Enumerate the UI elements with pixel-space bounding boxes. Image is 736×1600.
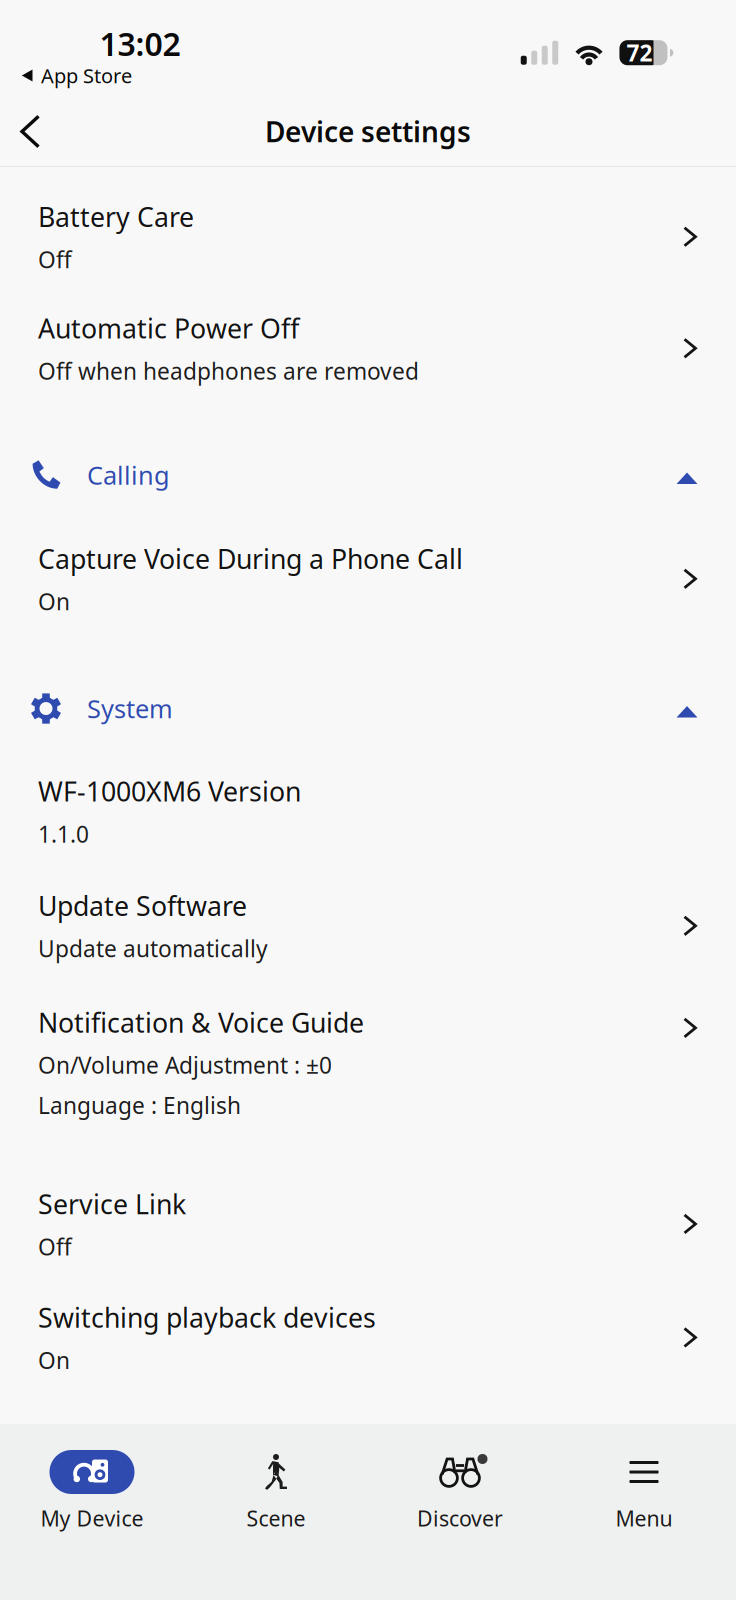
staticText: Device settings — [265, 113, 471, 150]
staticText: WF-1000XM6 Version — [38, 773, 301, 809]
staticText: Discover — [417, 1504, 503, 1532]
button[interactable]: Service Link — [0, 1164, 736, 1276]
staticText: On — [38, 586, 70, 616]
button[interactable]: WF-1000XM6 Version — [0, 732, 736, 863]
staticText: On — [38, 1345, 70, 1375]
button[interactable]: Switching playback devices — [0, 1278, 736, 1389]
staticText: On/Volume Adjustment : ±0 — [38, 1050, 332, 1080]
button[interactable]: Battery Care — [0, 167, 736, 288]
button[interactable]: Discover — [368, 1450, 552, 1532]
button[interactable]: Calling — [0, 451, 736, 499]
staticText: Update Software — [38, 888, 247, 923]
button[interactable]: Update Software — [0, 863, 736, 978]
staticText: Calling — [87, 458, 170, 492]
staticText: 13:02 — [99, 22, 180, 65]
button[interactable]: Scene — [184, 1450, 368, 1532]
button[interactable]: Automatic Power Off — [0, 288, 736, 400]
staticText: Off — [38, 244, 72, 274]
staticText: Automatic Power Off — [38, 310, 299, 346]
button[interactable]: Capture Voice During a Phone Call — [0, 499, 736, 630]
staticText: System — [87, 692, 173, 725]
staticText: Menu — [615, 1504, 672, 1532]
button[interactable]: Notification & Voice Guide — [0, 978, 736, 1134]
staticText: 1.1.0 — [38, 819, 89, 849]
staticText: 72 — [626, 38, 652, 68]
button[interactable]: Back — [0, 102, 56, 160]
staticText: Language : English — [38, 1090, 241, 1120]
button[interactable]: App Store — [0, 7, 132, 89]
staticText: Service Link — [38, 1186, 186, 1222]
staticText: Off — [38, 1232, 72, 1262]
staticText: Scene — [246, 1504, 305, 1532]
staticText: Switching playback devices — [38, 1300, 376, 1335]
staticText: Capture Voice During a Phone Call — [38, 541, 463, 576]
button[interactable]: Menu — [552, 1450, 736, 1532]
staticText: My Device — [40, 1504, 143, 1532]
button[interactable]: My Device — [0, 1450, 184, 1532]
staticText: Notification & Voice Guide — [38, 1005, 364, 1040]
staticText: Battery Care — [38, 199, 194, 234]
staticText: Off when headphones are removed — [38, 356, 419, 386]
staticText: Update automatically — [38, 933, 268, 964]
button[interactable]: System — [0, 684, 736, 732]
staticText: App Store — [41, 62, 132, 89]
